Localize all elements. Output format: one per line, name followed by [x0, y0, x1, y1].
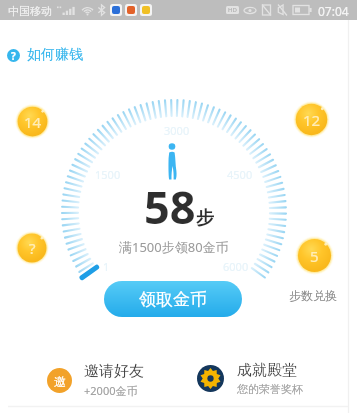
button[interactable]: reward coin 14 — [15, 104, 50, 139]
button[interactable]: 邀 — [47, 362, 144, 398]
staticText: 14 — [24, 112, 42, 132]
button[interactable]: reward coin 5 — [295, 236, 334, 275]
button[interactable]: ? — [7, 41, 91, 69]
staticText: 3000 — [164, 123, 190, 138]
staticText: 12 — [303, 110, 321, 130]
staticText: 1 — [103, 259, 110, 274]
staticText: 如何赚钱 — [27, 46, 83, 64]
staticText: HD — [228, 6, 237, 14]
staticText: 邀 — [54, 374, 66, 389]
button[interactable]: reward coin 12 — [293, 101, 330, 138]
button[interactable]: 步数兑换 — [289, 288, 337, 303]
staticText: 1500 — [95, 167, 121, 182]
staticText: 领取金币 — [139, 289, 207, 310]
staticText: 满1500步领80金币 — [119, 238, 229, 256]
button[interactable]: 领取金币 — [104, 281, 242, 317]
staticText: ? — [29, 238, 36, 258]
staticText: 07:04 — [318, 3, 349, 19]
staticText: 步数兑换 — [289, 288, 337, 303]
staticText: ? — [11, 49, 16, 62]
staticText: 邀请好友 — [84, 362, 144, 381]
staticText: +2000金币 — [84, 383, 138, 398]
staticText: 6000 — [223, 259, 249, 274]
button[interactable]: reward coin ? — [15, 231, 49, 265]
staticText: 5 — [310, 246, 319, 266]
staticText: 4500 — [227, 167, 253, 182]
staticText: 成就殿堂 — [237, 361, 297, 380]
button[interactable]: 成就殿堂 — [197, 361, 303, 396]
staticText: 58 — [144, 176, 196, 237]
staticText: 步 — [196, 207, 214, 230]
staticText: 您的荣誉奖杯 — [237, 382, 303, 396]
staticText: 中国移动 — [8, 4, 52, 18]
